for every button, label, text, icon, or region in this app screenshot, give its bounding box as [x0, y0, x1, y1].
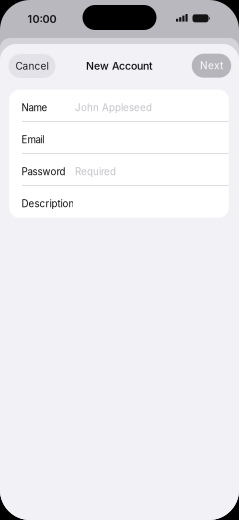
staticText: New Account: [86, 60, 153, 72]
button[interactable]: Description: [9, 188, 229, 220]
staticText: Name: [21, 102, 47, 113]
staticText: Password: [21, 166, 65, 177]
staticText: John Appleseed: [75, 102, 152, 113]
button[interactable]: Name: [9, 92, 229, 124]
button[interactable]: Cancel: [8, 54, 55, 78]
staticText: 10:00: [27, 12, 56, 26]
staticText: Description: [21, 198, 74, 209]
staticText: Next: [200, 60, 223, 72]
staticText: Email: [21, 134, 44, 145]
button[interactable]: Password: [9, 156, 229, 188]
staticText: Cancel: [15, 60, 48, 72]
button[interactable]: Next: [192, 54, 231, 78]
staticText: Required: [75, 166, 116, 177]
button[interactable]: Email: [9, 124, 229, 156]
